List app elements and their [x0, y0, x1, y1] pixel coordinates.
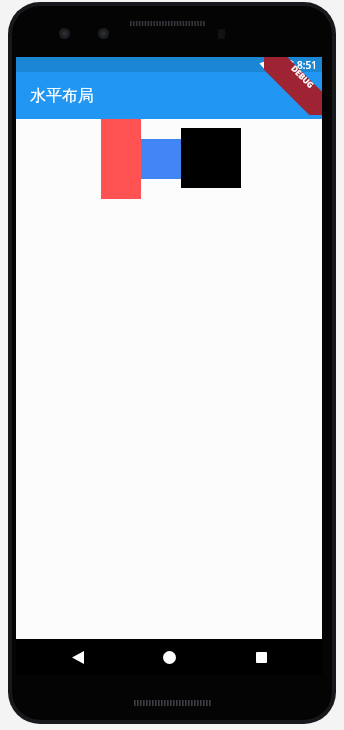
staticText: 水平布局 [30, 86, 94, 106]
staticText: 8:51 [297, 58, 317, 72]
button[interactable]: Home [139, 639, 199, 675]
button[interactable]: Back [48, 639, 108, 675]
staticText: DEBUG [289, 63, 317, 90]
button[interactable]: Recent apps [231, 639, 291, 675]
button[interactable]: 水平布局 [16, 72, 322, 119]
